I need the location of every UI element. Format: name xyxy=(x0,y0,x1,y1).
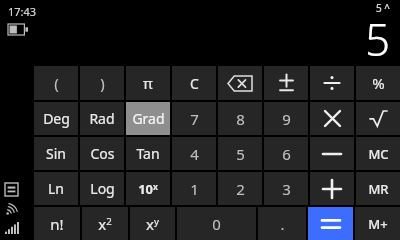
button[interactable]: ) xyxy=(80,66,124,100)
button[interactable]: Ln xyxy=(34,172,78,205)
staticText: Tan xyxy=(136,144,160,163)
button[interactable]: 4 xyxy=(172,137,216,170)
button[interactable]: x2 xyxy=(82,207,128,240)
staticText: 10x xyxy=(138,180,158,198)
button[interactable]: 9 xyxy=(264,102,308,135)
staticText: 6 xyxy=(282,144,291,164)
button[interactable]: C xyxy=(172,66,216,100)
staticText: 5 xyxy=(365,9,391,60)
button[interactable]: n! xyxy=(34,207,80,240)
button[interactable]: Rad xyxy=(80,102,124,135)
staticText: 7 xyxy=(190,109,199,129)
button[interactable]: xy xyxy=(130,207,175,240)
staticText: MC xyxy=(368,145,389,163)
button[interactable]: Minus xyxy=(310,137,354,170)
button[interactable]: Plus xyxy=(310,172,354,205)
staticText: 4 xyxy=(190,144,199,164)
staticText: MR xyxy=(368,180,389,198)
staticText: Grad xyxy=(132,109,165,128)
staticText: 3 xyxy=(282,179,291,199)
staticText: 0 xyxy=(212,214,221,234)
button[interactable]: 10x xyxy=(126,172,170,205)
button[interactable]: Multiply xyxy=(310,102,354,135)
staticText: . xyxy=(280,214,285,234)
button[interactable]: Grad xyxy=(126,102,170,135)
button[interactable]: Cos xyxy=(80,137,124,170)
button[interactable]: % xyxy=(356,66,400,100)
button[interactable]: Equals xyxy=(308,207,353,240)
button[interactable]: Log xyxy=(80,172,124,205)
button[interactable]: 6 xyxy=(264,137,308,170)
button[interactable]: Square root xyxy=(356,102,400,135)
button[interactable]: ( xyxy=(34,66,78,100)
button[interactable]: 8 xyxy=(218,102,262,135)
staticText: 8 xyxy=(236,109,245,129)
staticText: 1 xyxy=(190,179,199,199)
staticText: M+ xyxy=(368,215,388,233)
staticText: Sin xyxy=(46,144,66,163)
button[interactable]: Tan xyxy=(126,137,170,170)
button[interactable]: 7 xyxy=(172,102,216,135)
staticText: 2 xyxy=(236,179,245,199)
staticText: Rad xyxy=(89,109,115,128)
staticText: % xyxy=(372,73,385,93)
staticText: n! xyxy=(50,214,64,234)
staticText: π xyxy=(143,73,153,93)
button[interactable]: MR xyxy=(356,172,400,205)
button[interactable]: M+ xyxy=(355,207,400,240)
staticText: Ln xyxy=(48,179,64,198)
staticText: ) xyxy=(100,73,105,93)
button[interactable]: Backspace xyxy=(218,66,262,100)
staticText: 5 ^ xyxy=(376,1,391,15)
button[interactable]: π xyxy=(126,66,170,100)
button[interactable]: 2 xyxy=(218,172,262,205)
button[interactable]: Deg xyxy=(34,102,78,135)
staticText: ( xyxy=(54,73,59,93)
staticText: x2 xyxy=(98,214,112,234)
staticText: 9 xyxy=(282,109,291,129)
button[interactable]: . xyxy=(258,207,306,240)
button[interactable]: MC xyxy=(356,137,400,170)
staticText: 5 xyxy=(236,144,245,164)
staticText: xy xyxy=(146,214,159,234)
staticText: C xyxy=(190,74,199,93)
button[interactable]: Sin xyxy=(34,137,78,170)
button[interactable]: Divide xyxy=(310,66,354,100)
staticText: Deg xyxy=(43,109,70,128)
button[interactable]: 3 xyxy=(264,172,308,205)
button[interactable]: Plus minus sign xyxy=(264,66,308,100)
staticText: Cos xyxy=(90,144,115,163)
staticText: 17:43 xyxy=(8,4,37,19)
button[interactable]: 5 xyxy=(218,137,262,170)
button[interactable]: 1 xyxy=(172,172,216,205)
button[interactable]: 0 xyxy=(177,207,256,240)
staticText: Log xyxy=(90,179,115,198)
